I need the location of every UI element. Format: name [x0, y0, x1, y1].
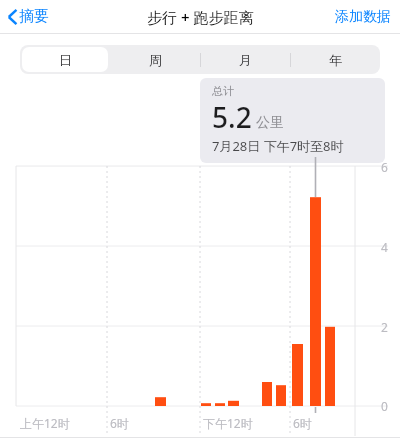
staticText: 7月28日 下午7时至8时	[212, 137, 344, 155]
button[interactable]: 添加数据	[326, 3, 400, 31]
staticText: 6时	[110, 415, 129, 431]
staticText: 下午12时	[203, 415, 253, 431]
staticText: 0	[381, 398, 388, 414]
staticText: 月	[239, 52, 252, 68]
staticText: 2	[381, 319, 388, 335]
staticText: 公里	[256, 114, 284, 132]
button[interactable]: 年	[290, 45, 380, 74]
staticText: 总计	[212, 84, 234, 98]
staticText: 年	[329, 52, 342, 68]
staticText: 日	[59, 52, 72, 68]
button[interactable]: 日	[20, 45, 110, 74]
staticText: 摘要	[19, 7, 49, 26]
button[interactable]: 月	[200, 45, 290, 74]
staticText: 5.2	[212, 98, 252, 136]
staticText: 步行 + 跑步距离	[147, 7, 254, 27]
staticText: 6时	[293, 415, 312, 431]
staticText: 周	[149, 52, 162, 68]
staticText: 6	[381, 159, 388, 175]
staticText: 4	[381, 239, 388, 255]
button[interactable]: 周	[110, 45, 200, 74]
staticText: 上午12时	[20, 415, 70, 431]
staticText: 添加数据	[335, 8, 391, 26]
button[interactable]: 摘要	[0, 3, 59, 30]
